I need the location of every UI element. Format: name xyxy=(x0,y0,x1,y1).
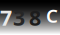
staticText: 7 xyxy=(0,3,12,32)
staticText: 3 xyxy=(13,3,25,32)
staticText: C xyxy=(46,3,58,28)
staticText: 8 xyxy=(29,3,41,32)
